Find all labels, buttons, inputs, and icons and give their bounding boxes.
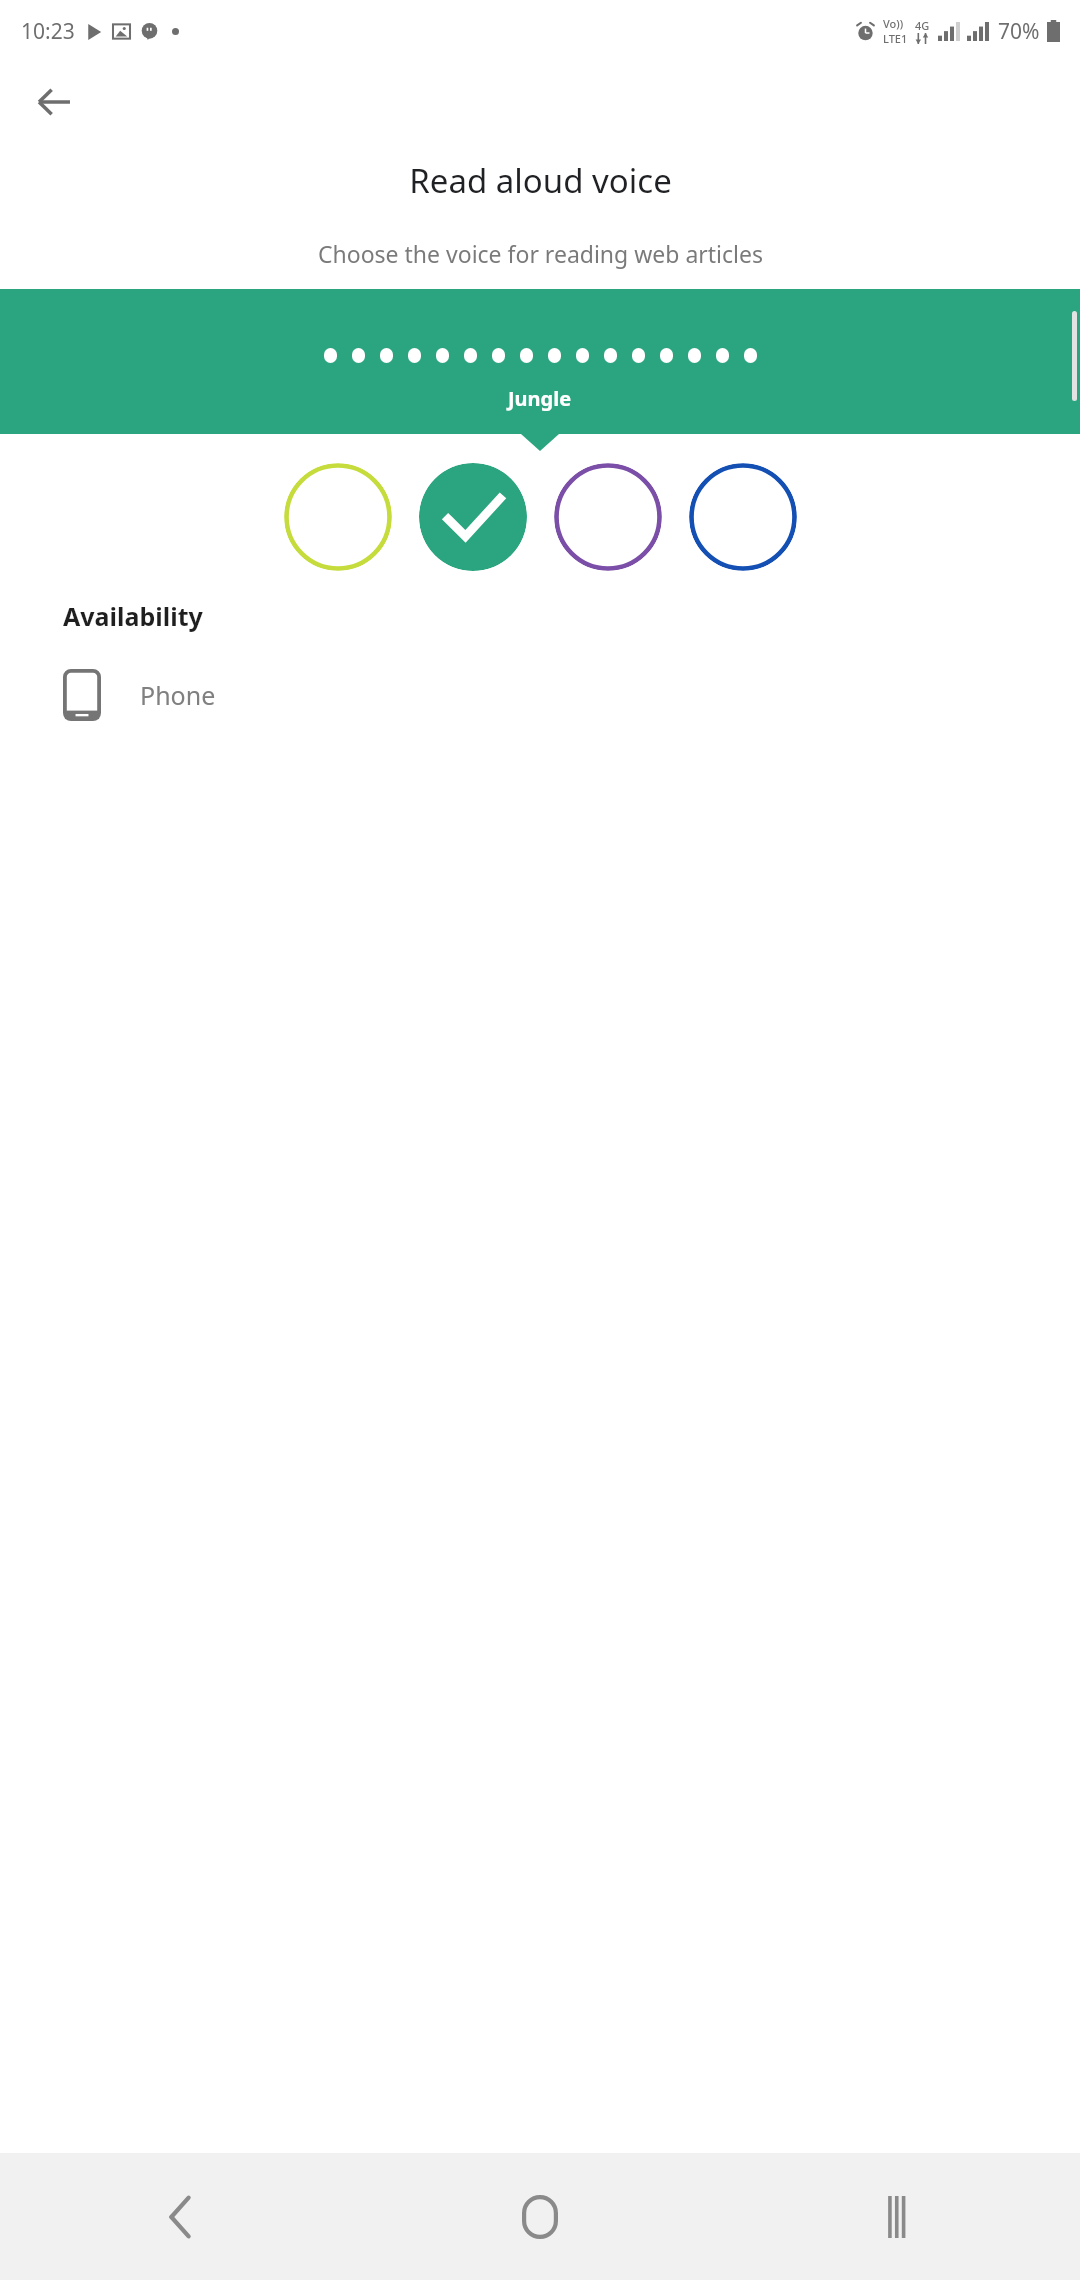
staticText: 10:23	[21, 17, 75, 46]
staticText: Read aloud voice	[409, 158, 672, 203]
staticText: 4G	[915, 18, 930, 33]
staticText: 70%	[998, 17, 1040, 46]
button[interactable]: Lime voice	[284, 463, 392, 571]
staticText: LTE1	[883, 31, 908, 46]
staticText: Phone	[140, 678, 216, 712]
button[interactable]: Back	[0, 2153, 360, 2280]
button[interactable]: Phone	[0, 663, 1080, 727]
staticText: Jungle	[508, 385, 572, 412]
button[interactable]: Home	[360, 2153, 720, 2280]
staticText: Vo))	[883, 16, 904, 31]
button[interactable]: Purple voice	[554, 463, 662, 571]
button[interactable]: Blue voice	[689, 463, 797, 571]
button[interactable]: Jungle voice, selected	[419, 463, 527, 571]
staticText: Choose the voice for reading web article…	[318, 238, 763, 269]
button[interactable]: Recent apps	[720, 2153, 1080, 2280]
staticText: Availability	[63, 599, 203, 633]
button[interactable]: Back	[14, 62, 94, 142]
